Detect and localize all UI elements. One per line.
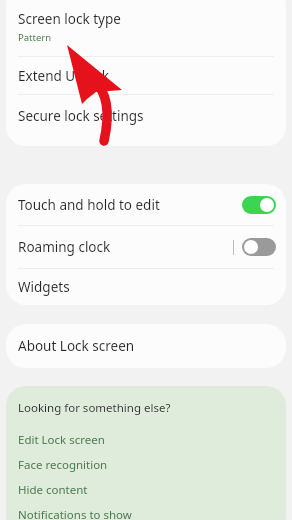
- staticText: Notifications to show: [18, 507, 132, 520]
- button[interactable]: Hide content: [6, 477, 286, 502]
- staticText: Secure lock settings: [18, 107, 144, 125]
- staticText: Face recognition: [18, 457, 108, 473]
- staticText: Widgets: [18, 278, 70, 296]
- button[interactable]: Secure lock settings: [6, 95, 286, 136]
- button[interactable]: Roaming clock: [6, 226, 286, 268]
- staticText: About Lock screen: [18, 337, 135, 355]
- button[interactable]: Edit Lock screen: [6, 427, 286, 452]
- other: Pointer arrow: [60, 42, 130, 147]
- button[interactable]: Notifications to show: [6, 502, 286, 520]
- staticText: Hide content: [18, 482, 88, 498]
- button[interactable]: About Lock screen: [6, 324, 286, 368]
- staticText: Screen lock type: [18, 10, 121, 28]
- button[interactable]: On: [242, 196, 276, 214]
- staticText: Roaming clock: [18, 238, 111, 256]
- staticText: Touch and hold to edit: [18, 196, 160, 214]
- staticText: Extend Unlock: [18, 67, 109, 85]
- staticText: Pattern: [18, 31, 52, 44]
- staticText: Edit Lock screen: [18, 432, 105, 448]
- button[interactable]: Extend Unlock: [6, 57, 286, 94]
- staticText: Looking for something else?: [18, 400, 171, 416]
- button[interactable]: Face recognition: [6, 452, 286, 477]
- button[interactable]: Touch and hold to edit: [6, 184, 286, 225]
- button[interactable]: Widgets: [6, 269, 286, 305]
- button[interactable]: Off: [242, 238, 276, 256]
- button[interactable]: Screen lock type: [6, 0, 286, 56]
